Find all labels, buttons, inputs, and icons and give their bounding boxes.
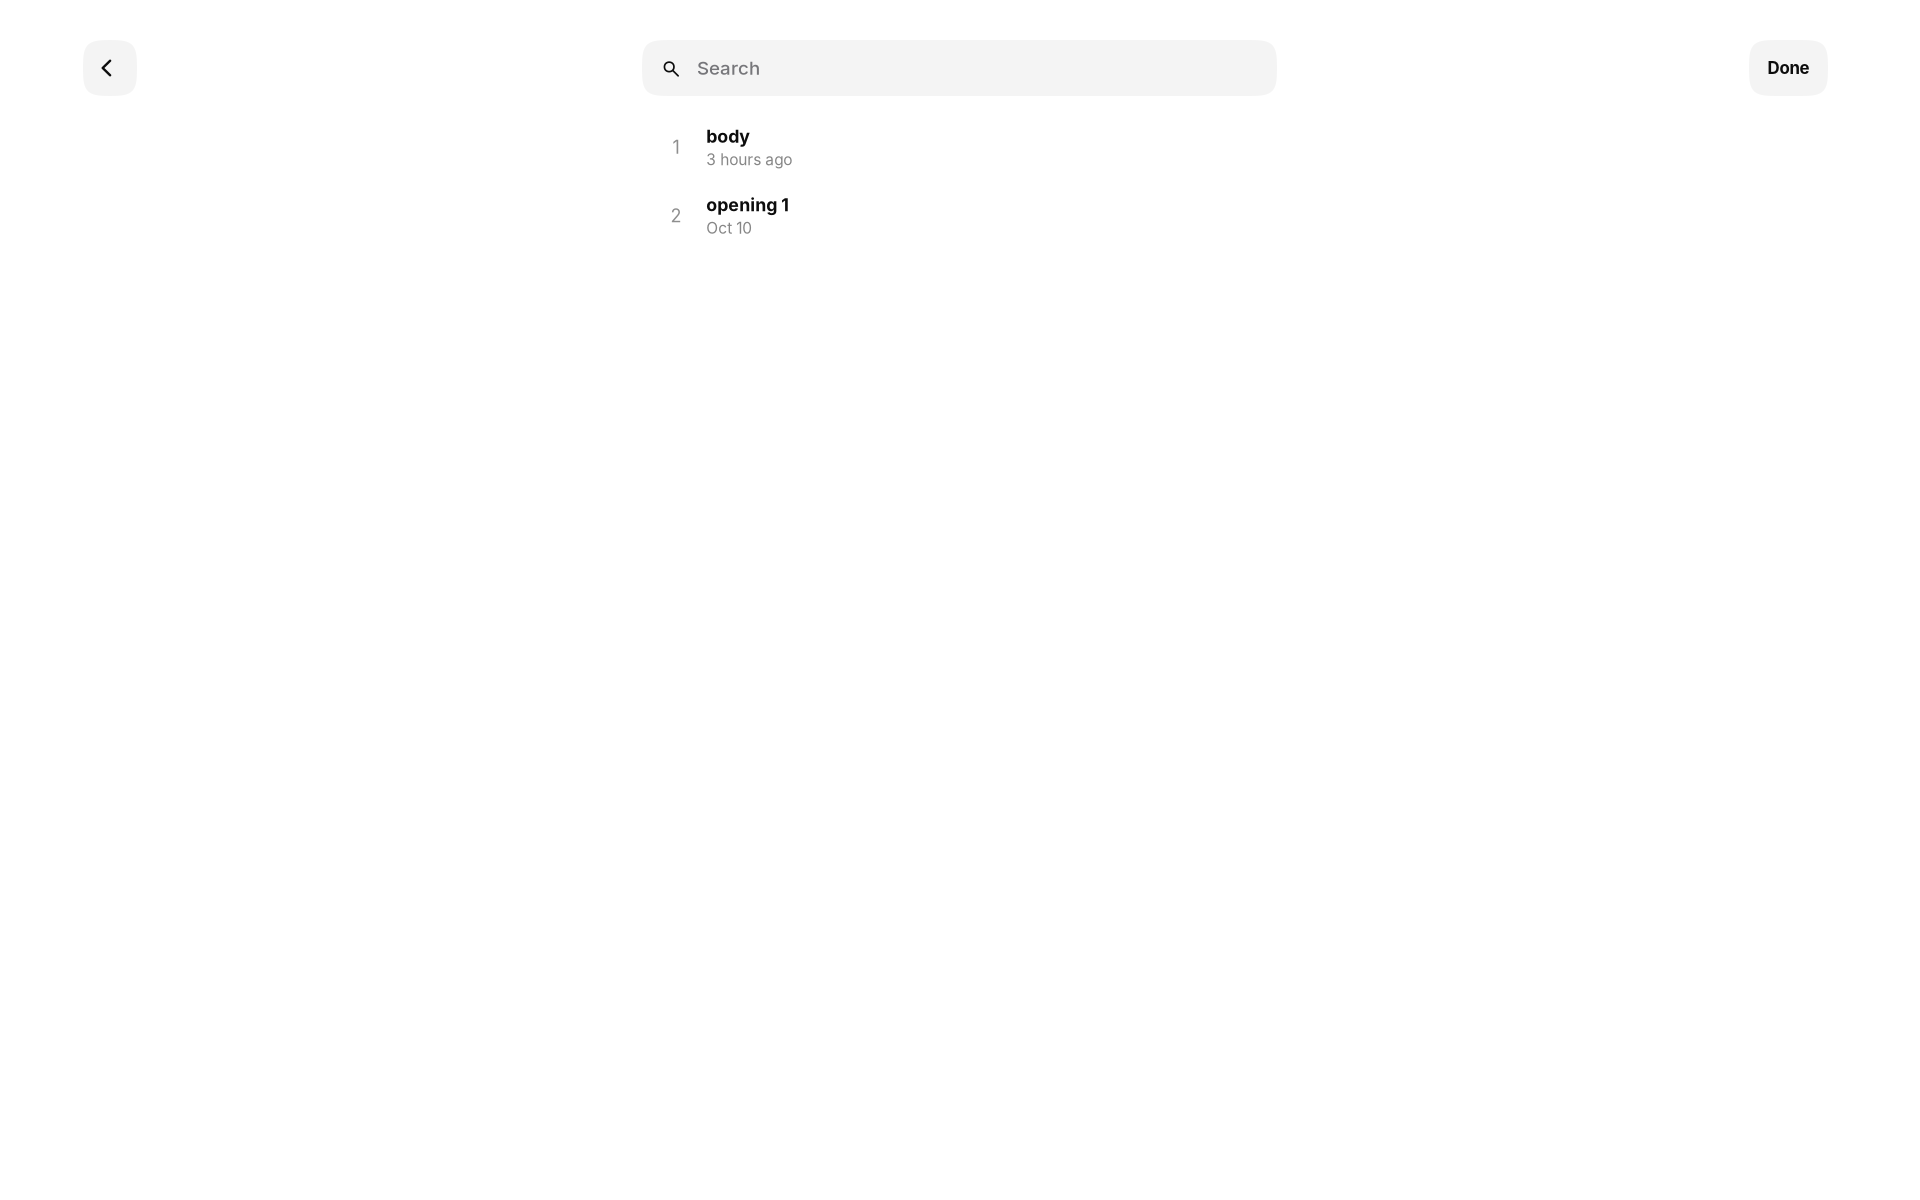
staticText: opening 1	[706, 194, 789, 215]
button[interactable]: Search	[642, 40, 1277, 96]
staticText: 1	[673, 136, 680, 158]
staticText: 2	[671, 205, 682, 227]
staticText: Oct 10	[706, 219, 752, 237]
staticText: 3 hours ago	[706, 150, 792, 169]
button[interactable]: Done	[1749, 40, 1828, 96]
staticText: Search	[697, 57, 760, 79]
staticText: Done	[1767, 58, 1809, 78]
staticText: body	[706, 125, 750, 147]
button[interactable]: 2	[660, 181, 1295, 250]
button[interactable]: Back	[83, 40, 137, 96]
button[interactable]: 1	[660, 113, 1295, 181]
